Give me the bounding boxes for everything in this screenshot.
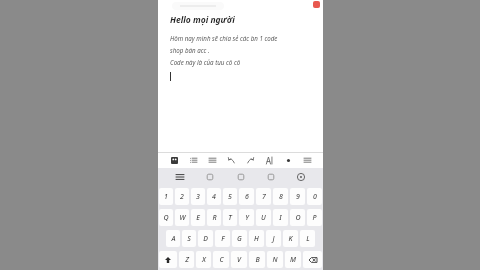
staticText: T — [228, 213, 232, 223]
staticText: D — [203, 234, 208, 244]
button[interactable]: O — [290, 209, 305, 226]
staticText: 2 — [180, 192, 184, 202]
staticText: B — [255, 255, 260, 265]
button[interactable]: Insert image — [167, 153, 181, 167]
staticText: 8 — [279, 192, 283, 202]
staticText: C — [219, 255, 224, 265]
staticText: W — [179, 213, 186, 223]
button[interactable]: 1 — [159, 188, 173, 205]
staticText: Z — [185, 255, 189, 265]
staticText: I — [279, 213, 282, 223]
button[interactable]: 9 — [290, 188, 305, 205]
button[interactable]: Menu — [172, 169, 188, 185]
button[interactable]: Y — [239, 209, 254, 226]
button[interactable]: L — [300, 230, 315, 247]
button[interactable]: A — [166, 230, 180, 247]
button[interactable]: J — [266, 230, 281, 247]
staticText: G — [237, 234, 242, 244]
button[interactable]: K — [283, 230, 298, 247]
button[interactable]: Redo — [243, 153, 257, 167]
staticText: 7 — [262, 192, 266, 202]
staticText: N — [272, 255, 278, 265]
button[interactable]: 5 — [223, 188, 237, 205]
staticText: O — [295, 213, 301, 223]
button[interactable]: 0 — [307, 188, 322, 205]
button[interactable]: Notification — [313, 1, 320, 8]
button[interactable]: Sticker — [202, 169, 218, 185]
button[interactable]: D — [198, 230, 213, 247]
staticText: H — [254, 234, 259, 244]
button[interactable]: C — [213, 251, 229, 268]
button[interactable]: V — [231, 251, 247, 268]
staticText: 5 — [228, 192, 232, 202]
staticText: Hôm nay mình sẽ chia sẻ các bn 1 code — [170, 34, 278, 42]
staticText: X — [202, 255, 206, 265]
button[interactable]: F — [215, 230, 230, 247]
staticText: 4 — [212, 192, 216, 202]
button[interactable]: P — [307, 209, 322, 226]
button[interactable]: Settings — [293, 169, 309, 185]
staticText: 1 — [164, 192, 168, 202]
staticText: Hello mọi người — [170, 14, 235, 26]
button[interactable]: B — [249, 251, 265, 268]
button[interactable]: R — [207, 209, 221, 226]
staticText: E — [196, 213, 200, 223]
button[interactable]: I — [273, 209, 288, 226]
button[interactable]: U — [256, 209, 271, 226]
button[interactable]: 2 — [175, 188, 189, 205]
button[interactable]: M — [285, 251, 301, 268]
button[interactable]: 8 — [273, 188, 288, 205]
button[interactable] — [172, 2, 224, 10]
staticText: S — [187, 234, 191, 244]
button[interactable]: W — [175, 209, 189, 226]
staticText: L — [306, 234, 310, 244]
button[interactable]: Align — [205, 153, 219, 167]
button[interactable]: Undo — [224, 153, 238, 167]
button[interactable]: N — [267, 251, 283, 268]
staticText: Code này là của tuu cô cô — [170, 58, 241, 66]
button[interactable]: Q — [159, 209, 173, 226]
button[interactable]: Text format — [262, 153, 276, 167]
button[interactable]: G — [232, 230, 247, 247]
button[interactable]: X — [196, 251, 211, 268]
button[interactable]: Z — [179, 251, 194, 268]
button[interactable]: H — [249, 230, 264, 247]
button[interactable]: 3 — [191, 188, 205, 205]
staticText: 6 — [245, 192, 249, 202]
button[interactable]: T — [223, 209, 237, 226]
staticText: F — [221, 234, 225, 244]
button[interactable]: Text color — [281, 153, 295, 167]
button[interactable]: 6 — [239, 188, 254, 205]
staticText: 0 — [313, 192, 317, 202]
button[interactable]: 4 — [207, 188, 221, 205]
button[interactable]: Font — [233, 169, 249, 185]
button[interactable]: Bulleted list — [186, 153, 200, 167]
button[interactable]: Indent — [300, 153, 314, 167]
staticText: 9 — [296, 192, 300, 202]
staticText: J — [272, 234, 275, 244]
button[interactable]: S — [182, 230, 196, 247]
staticText: U — [261, 213, 266, 223]
staticText: R — [212, 213, 217, 223]
staticText: V — [237, 255, 241, 265]
staticText: Y — [245, 213, 249, 223]
staticText: shop bán acc . — [170, 46, 210, 54]
button[interactable]: Shift — [159, 251, 177, 268]
staticText: 3 — [196, 192, 200, 202]
button[interactable]: E — [191, 209, 205, 226]
staticText: M — [290, 255, 296, 265]
staticText: A — [171, 234, 176, 244]
staticText: K — [288, 234, 293, 244]
staticText: Q — [163, 213, 169, 223]
button[interactable]: 7 — [256, 188, 271, 205]
staticText: P — [312, 213, 317, 223]
button[interactable]: Theme — [263, 169, 279, 185]
button[interactable]: Backspace — [303, 251, 322, 268]
